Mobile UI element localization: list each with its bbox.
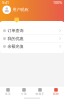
staticText: 我的 [53,92,59,96]
button[interactable]: 首页 [0,87,16,96]
staticText: 购物车 [35,92,44,96]
staticText: 用户昵称 [12,7,28,12]
button[interactable]: Profile photo [2,5,11,14]
staticText: 100% [53,0,62,5]
button[interactable]: 余额充值 [0,43,64,50]
staticText: 首页 [5,92,11,96]
button[interactable]: 订单查询 [0,27,64,34]
staticText: 我的优惠 [8,36,24,41]
button[interactable]: 我的优惠 [0,35,64,42]
button[interactable]: 分类 [16,87,32,96]
staticText: 余额充值 [8,44,24,49]
button[interactable]: 购物车 [32,87,48,96]
staticText: 9:41 [2,0,9,5]
staticText: 分类 [21,92,27,96]
button[interactable]: Membership level [14,18,19,23]
staticText: 订单查询 [8,28,24,33]
button[interactable]: 我的 [48,87,64,96]
